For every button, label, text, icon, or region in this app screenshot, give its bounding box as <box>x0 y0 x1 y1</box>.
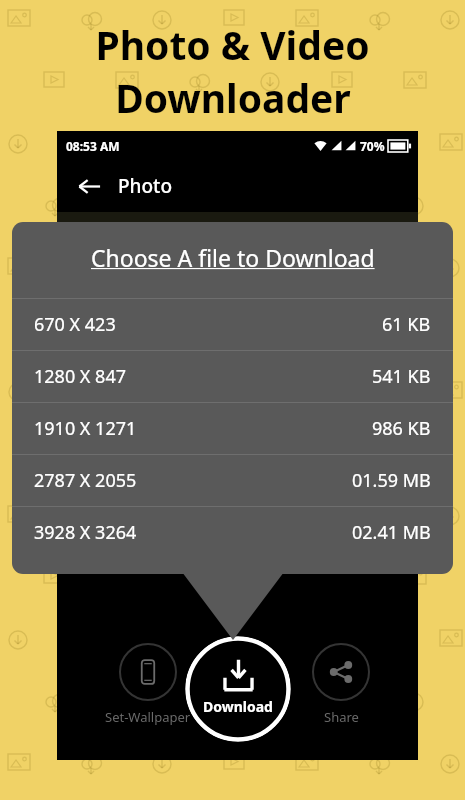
staticText: Download <box>203 697 273 716</box>
button[interactable]: Choose A file to Download <box>12 222 453 292</box>
button[interactable]: 670 X 423 <box>12 299 453 350</box>
button[interactable]: Back <box>72 169 106 203</box>
staticText: 01.59 MB <box>352 468 431 493</box>
button[interactable]: 1280 X 847 <box>12 351 453 402</box>
staticText: 61 KB <box>382 312 431 337</box>
button[interactable]: Share <box>308 639 374 730</box>
button[interactable]: 3928 X 3264 <box>12 507 453 558</box>
staticText: Choose A file to Download <box>91 242 375 273</box>
staticText: Share <box>324 708 359 726</box>
staticText: Set-Wallpaper <box>105 708 191 726</box>
staticText: 670 X 423 <box>34 312 116 337</box>
staticText: Photo & Video <box>95 18 370 71</box>
staticText: 541 KB <box>372 364 431 389</box>
staticText: 2787 X 2055 <box>34 468 137 493</box>
staticText: 02.41 MB <box>352 520 431 545</box>
staticText: 1910 X 1271 <box>34 416 137 441</box>
staticText: Photo <box>118 173 172 199</box>
staticText: 08:53 AM <box>66 138 120 154</box>
button[interactable]: 2787 X 2055 <box>12 455 453 506</box>
staticText: 3928 X 3264 <box>34 520 137 545</box>
button[interactable]: 1910 X 1271 <box>12 403 453 454</box>
staticText: Downloader <box>115 71 351 124</box>
button[interactable]: Download <box>185 636 291 742</box>
staticText: 986 KB <box>372 416 431 441</box>
staticText: 1280 X 847 <box>34 364 126 389</box>
staticText: 70% <box>360 138 385 154</box>
button[interactable]: Set-Wallpaper <box>101 639 195 730</box>
